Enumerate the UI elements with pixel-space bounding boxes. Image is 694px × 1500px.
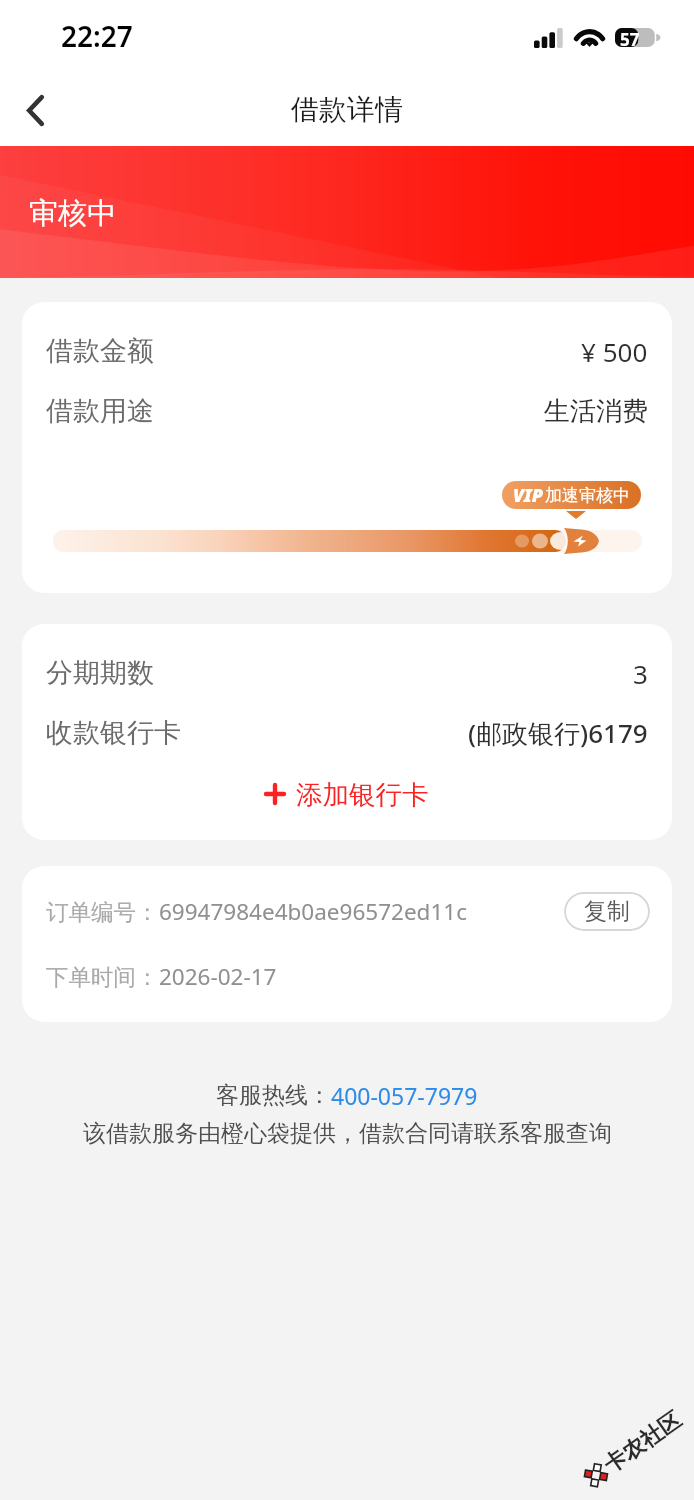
staticText: 收款银行卡 <box>46 716 181 750</box>
staticText: 生活消费 <box>544 395 648 428</box>
staticText: 该借款服务由橙心袋提供，借款合同请联系客服查询 <box>83 1119 612 1148</box>
staticText: 借款金额 <box>46 334 154 368</box>
staticText: 借款详情 <box>291 92 403 127</box>
staticText: 借款用途 <box>46 394 154 428</box>
staticText: 订单编号： <box>46 898 159 926</box>
staticText: 客服热线： <box>216 1081 331 1110</box>
staticText: ¥ 500 <box>581 334 648 369</box>
staticText: 卡农社区 <box>599 1406 687 1479</box>
staticText: VIP <box>513 483 543 508</box>
staticText: 3 <box>633 656 648 691</box>
staticText: 审核中 <box>29 195 116 232</box>
staticText: 22:27 <box>61 17 133 55</box>
staticText: 69947984e4b0ae96572ed11c <box>159 896 467 927</box>
button[interactable]: 400-057-7979 <box>331 1080 478 1111</box>
staticText: 添加银行卡 <box>296 778 429 811</box>
button[interactable]: 添加银行卡 <box>22 763 672 825</box>
staticText: 57 <box>620 28 640 51</box>
staticText: 复制 <box>584 897 630 926</box>
staticText: 分期期数 <box>46 656 154 690</box>
staticText: 2026-02-17 <box>159 961 277 992</box>
staticText: (邮政银行)6179 <box>468 715 648 751</box>
staticText: 加速审核中 <box>545 485 630 506</box>
button[interactable]: Back <box>0 73 74 146</box>
button[interactable]: 复制 <box>564 892 650 931</box>
staticText: 下单时间： <box>46 963 159 991</box>
